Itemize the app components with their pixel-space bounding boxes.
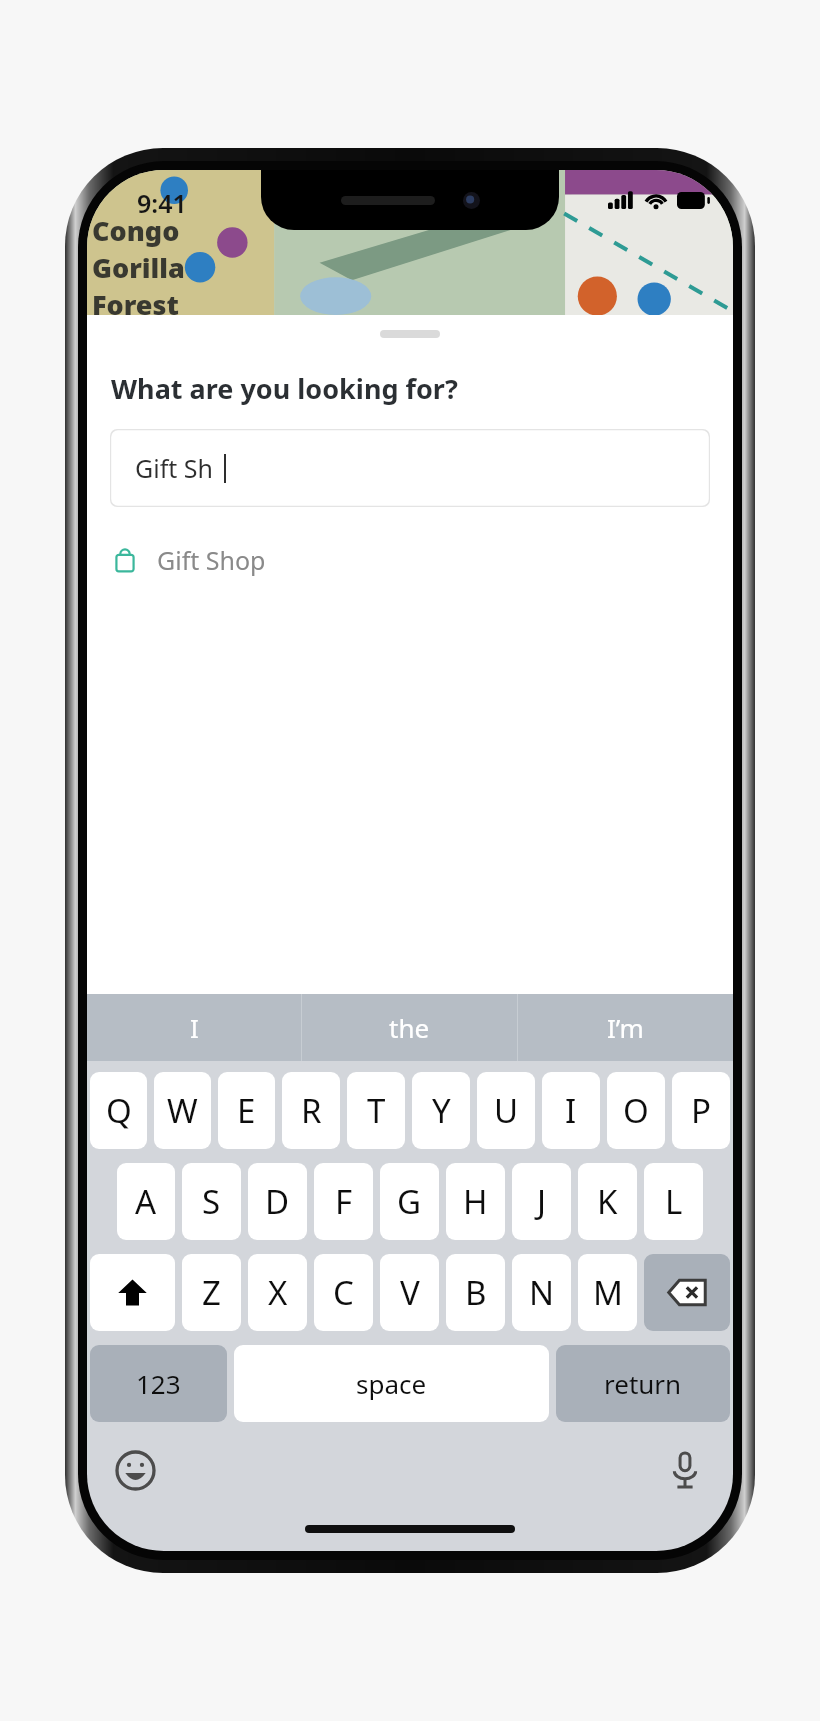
staticText: C (333, 1270, 354, 1315)
button[interactable]: P (672, 1072, 730, 1149)
button[interactable]: L (644, 1163, 703, 1240)
button[interactable]: H (446, 1163, 505, 1240)
button[interactable]: space (234, 1345, 549, 1422)
staticText: V (400, 1270, 420, 1315)
button[interactable]: I (87, 994, 301, 1061)
button[interactable]: N (512, 1254, 571, 1331)
staticText: 9:41 (137, 186, 187, 220)
staticText: Forest (92, 286, 179, 315)
staticText: E (237, 1088, 256, 1133)
button[interactable]: E (218, 1072, 275, 1149)
button[interactable]: G (380, 1163, 439, 1240)
button[interactable]: K (578, 1163, 637, 1240)
button[interactable]: Z (182, 1254, 241, 1331)
staticText: X (268, 1270, 288, 1315)
button[interactable]: Shift (90, 1254, 175, 1331)
button[interactable]: Gift Shop (87, 534, 733, 586)
button[interactable]: Emoji (109, 1444, 161, 1496)
button[interactable]: O (607, 1072, 665, 1149)
button[interactable]: F (314, 1163, 373, 1240)
button[interactable]: I (542, 1072, 600, 1149)
button[interactable]: return (556, 1345, 730, 1422)
staticText: O (623, 1088, 649, 1133)
staticText: A (135, 1179, 157, 1224)
staticText: N (529, 1270, 555, 1315)
staticText: F (335, 1179, 353, 1224)
staticText: I’m (607, 1010, 644, 1045)
staticText: Gift Sh (135, 451, 213, 485)
staticText: P (691, 1088, 711, 1133)
staticText: Y (432, 1088, 451, 1133)
staticText: W (167, 1088, 198, 1133)
button[interactable]: the (302, 994, 517, 1061)
button[interactable]: C (314, 1254, 373, 1331)
staticText: G (397, 1179, 422, 1224)
button[interactable]: U (477, 1072, 535, 1149)
staticText: T (367, 1088, 386, 1133)
staticText: I (565, 1088, 577, 1133)
staticText: the (389, 1010, 430, 1045)
staticText: Q (106, 1088, 132, 1133)
button[interactable]: M (578, 1254, 637, 1331)
staticText: return (604, 1366, 682, 1401)
staticText: Z (202, 1270, 221, 1315)
button[interactable]: Gift Sh (110, 429, 710, 507)
staticText: M (593, 1270, 623, 1315)
button[interactable]: V (380, 1254, 439, 1331)
staticText: U (494, 1088, 519, 1133)
button[interactable]: Dictation (659, 1444, 711, 1496)
staticText: D (265, 1179, 290, 1224)
button[interactable]: S (182, 1163, 241, 1240)
staticText: H (463, 1179, 488, 1224)
button[interactable]: X (248, 1254, 307, 1331)
button[interactable]: Q (90, 1072, 147, 1149)
staticText: S (202, 1179, 221, 1224)
staticText: I (190, 1010, 199, 1045)
staticText: space (356, 1366, 427, 1401)
staticText: 123 (136, 1366, 181, 1401)
button[interactable]: D (248, 1163, 307, 1240)
staticText: Congo (92, 212, 180, 249)
staticText: What are you looking for? (111, 370, 458, 407)
button[interactable]: B (446, 1254, 505, 1331)
staticText: L (665, 1179, 683, 1224)
button[interactable]: Y (412, 1072, 470, 1149)
staticText: B (465, 1270, 487, 1315)
staticText: J (537, 1179, 547, 1224)
button[interactable]: W (154, 1072, 211, 1149)
button[interactable]: R (282, 1072, 340, 1149)
button[interactable]: Backspace (644, 1254, 730, 1331)
button[interactable]: T (347, 1072, 405, 1149)
staticText: K (597, 1179, 618, 1224)
staticText: Gift Shop (157, 543, 266, 577)
button[interactable]: A (117, 1163, 175, 1240)
staticText: Gorilla (92, 249, 185, 286)
button[interactable]: I’m (518, 994, 733, 1061)
button[interactable]: J (512, 1163, 571, 1240)
staticText: R (301, 1088, 322, 1133)
button[interactable]: 123 (90, 1345, 227, 1422)
